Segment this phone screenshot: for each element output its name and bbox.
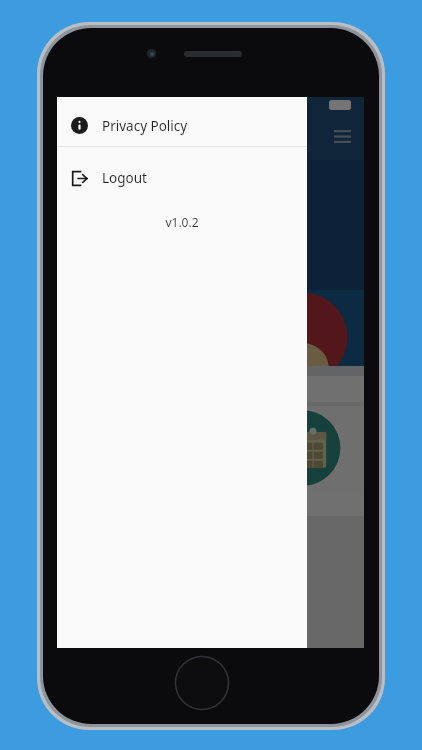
button[interactable]: Pemeriksaan [57,406,364,516]
button[interactable]: Privacy Policy [57,105,307,146]
button[interactable]: Kehadiran [57,290,364,402]
staticText: Privacy Policy [102,117,188,135]
button[interactable]: Open navigation menu [320,114,364,158]
staticText: Logout [102,169,147,187]
staticText: v1.0.2 [57,214,307,230]
button[interactable]: Logout [57,160,307,196]
